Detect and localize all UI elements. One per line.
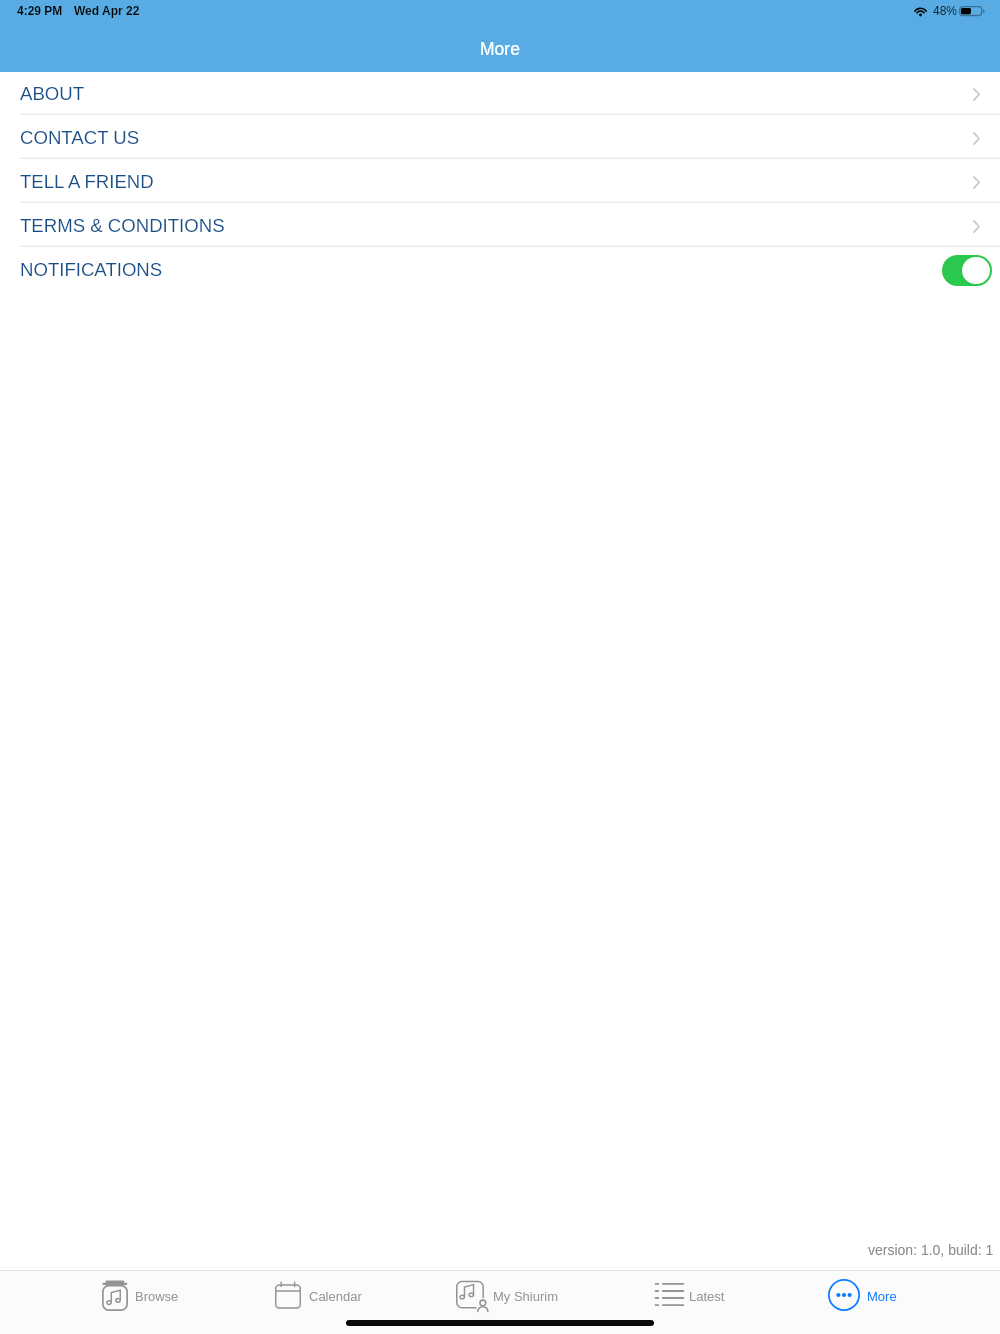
button[interactable]: ABOUT (0, 72, 1000, 116)
staticText: TERMS & CONDITIONS (20, 215, 225, 236)
staticText: More (867, 1289, 897, 1304)
staticText: Browse (135, 1289, 179, 1304)
button[interactable]: Latest (655, 1271, 730, 1321)
button[interactable]: More (828, 1271, 898, 1321)
staticText: NOTIFICATIONS (20, 259, 163, 280)
staticText: My Shiurim (493, 1289, 559, 1304)
staticText: Wed Apr 22 (74, 4, 140, 17)
staticText: TELL A FRIEND (20, 171, 154, 192)
staticText: More (480, 39, 520, 59)
staticText: 48% (933, 4, 958, 17)
staticText: Latest (689, 1289, 725, 1304)
staticText: version: 1.0, build: 1 (868, 1242, 994, 1258)
staticText: 4:29 PM (17, 4, 63, 17)
staticText: ABOUT (20, 83, 85, 104)
button[interactable]: My Shiurim (456, 1271, 560, 1321)
button[interactable]: Notifications toggle (942, 255, 992, 286)
button[interactable]: Calendar (275, 1271, 361, 1321)
button[interactable]: CONTACT US (0, 116, 1000, 160)
button[interactable]: TERMS & CONDITIONS (0, 204, 1000, 248)
staticText: CONTACT US (20, 127, 140, 148)
button[interactable]: TELL A FRIEND (0, 160, 1000, 204)
button[interactable]: Browse (102, 1271, 178, 1321)
staticText: Calendar (309, 1289, 362, 1304)
